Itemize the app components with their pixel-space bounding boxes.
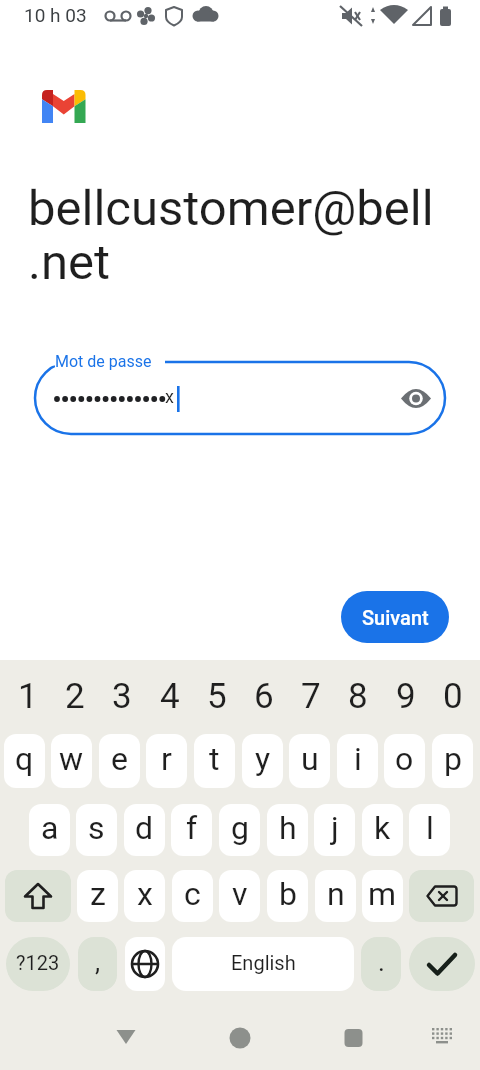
button[interactable]: 6 <box>240 674 287 718</box>
staticText: x <box>165 386 174 407</box>
staticText: u <box>301 740 319 778</box>
staticText: t <box>209 740 220 778</box>
button[interactable]: w <box>51 734 92 788</box>
button[interactable]: q <box>4 734 45 788</box>
button[interactable] <box>409 870 474 922</box>
staticText: x <box>137 875 153 913</box>
staticText: f <box>186 809 198 847</box>
staticText: p <box>444 740 462 778</box>
staticText: Suivant <box>362 606 429 629</box>
button[interactable]: b <box>267 870 308 922</box>
staticText: r <box>161 740 172 778</box>
staticText: l <box>426 809 434 847</box>
button[interactable] <box>327 1015 379 1060</box>
button[interactable]: 1 <box>4 674 51 718</box>
button[interactable] <box>100 1015 152 1060</box>
button[interactable]: d <box>124 804 165 856</box>
staticText: 5 <box>207 676 227 717</box>
button[interactable]: v <box>219 870 260 922</box>
staticText: 3 <box>112 676 132 717</box>
staticText: English <box>231 951 296 974</box>
staticText: bellcustomer@bell .net <box>28 180 434 291</box>
staticText: z <box>90 875 106 913</box>
staticText: q <box>15 740 34 778</box>
button[interactable]: ?123 <box>6 937 70 991</box>
button[interactable]: t <box>194 734 235 788</box>
staticText: e <box>111 740 128 778</box>
button[interactable]: . <box>361 937 401 991</box>
button[interactable]: 8 <box>334 674 381 718</box>
staticText: 9 <box>396 676 416 717</box>
staticText: . <box>378 947 385 977</box>
staticText: g <box>231 809 249 847</box>
staticText: i <box>354 740 362 778</box>
staticText: a <box>41 809 59 847</box>
staticText: m <box>368 875 397 913</box>
button[interactable]: r <box>146 734 187 788</box>
button[interactable]: i <box>337 734 378 788</box>
staticText: 4 <box>160 676 180 717</box>
staticText: j <box>331 809 339 847</box>
button[interactable] <box>5 870 71 922</box>
button[interactable]: 9 <box>382 674 429 718</box>
staticText: n <box>327 875 345 913</box>
button[interactable]: a <box>29 804 70 856</box>
button[interactable]: u <box>289 734 330 788</box>
button[interactable]: k <box>362 804 403 856</box>
staticText: y <box>255 740 271 778</box>
button[interactable]: 2 <box>51 674 98 718</box>
staticText: Mot de passe <box>55 352 152 371</box>
button[interactable] <box>214 1015 266 1060</box>
button[interactable]: o <box>384 734 425 788</box>
button[interactable]: , <box>78 937 117 991</box>
button[interactable]: z <box>77 870 118 922</box>
staticText: 2 <box>65 676 85 717</box>
staticText: b <box>279 875 297 913</box>
button[interactable]: Suivant <box>341 591 449 643</box>
button[interactable]: c <box>172 870 213 922</box>
button[interactable]: g <box>219 804 260 856</box>
button[interactable]: f <box>171 804 212 856</box>
button[interactable]: j <box>314 804 355 856</box>
staticText: o <box>395 740 414 778</box>
button[interactable] <box>415 1015 467 1060</box>
staticText: c <box>184 875 201 913</box>
button[interactable]: y <box>242 734 283 788</box>
staticText: 7 <box>301 676 321 717</box>
button[interactable]: h <box>267 804 308 856</box>
button[interactable]: 0 <box>429 674 476 718</box>
staticText: h <box>279 809 297 847</box>
button[interactable]: x <box>124 870 165 922</box>
button[interactable]: 3 <box>98 674 145 718</box>
button[interactable] <box>409 937 475 991</box>
staticText: s <box>88 809 105 847</box>
staticText: ?123 <box>16 951 60 974</box>
staticText: , <box>95 947 101 977</box>
staticText: 1 <box>18 676 38 717</box>
button[interactable]: English <box>172 937 354 991</box>
staticText: v <box>232 875 248 913</box>
button[interactable] <box>125 937 165 991</box>
staticText: 6 <box>254 676 274 717</box>
button[interactable]: 5 <box>193 674 240 718</box>
staticText: 0 <box>443 676 463 717</box>
staticText: 10 h 03 <box>24 4 87 26</box>
button[interactable]: 4 <box>146 674 193 718</box>
button[interactable]: 7 <box>287 674 334 718</box>
button[interactable]: l <box>409 804 450 856</box>
button[interactable]: s <box>76 804 117 856</box>
staticText: 8 <box>348 676 368 717</box>
button[interactable]: e <box>99 734 140 788</box>
button[interactable]: m <box>362 870 403 922</box>
staticText: w <box>59 740 84 778</box>
button[interactable]: p <box>432 734 473 788</box>
staticText: d <box>135 809 154 847</box>
staticText: k <box>374 809 391 847</box>
button[interactable]: n <box>315 870 356 922</box>
